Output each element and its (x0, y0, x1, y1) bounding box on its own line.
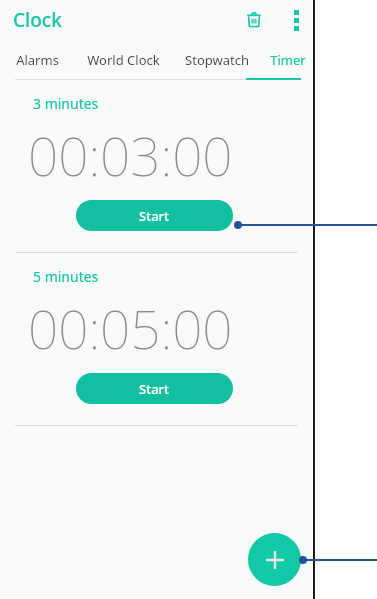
button[interactable]: Stopwatch (172, 40, 262, 80)
button[interactable]: Clock (13, 7, 62, 33)
staticText: Alarms (16, 51, 59, 69)
staticText: Timer (270, 51, 306, 69)
button[interactable]: 3 minutes (33, 94, 99, 113)
button[interactable]: Timer (262, 40, 313, 80)
staticText: Stopwatch (185, 51, 249, 69)
button[interactable]: Add timer (248, 533, 301, 586)
staticText: Start (139, 380, 170, 398)
button[interactable]: More options (280, 4, 312, 36)
button[interactable]: Start (76, 200, 233, 231)
staticText: 00:03:00 (28, 119, 233, 191)
button[interactable]: Alarms (0, 40, 75, 80)
button[interactable]: Delete (238, 4, 270, 36)
staticText: Start (139, 207, 170, 225)
button[interactable]: Start (76, 373, 233, 404)
staticText: 00:05:00 (28, 292, 233, 364)
button[interactable]: World Clock (75, 40, 172, 80)
button[interactable]: 5 minutes (33, 267, 99, 286)
staticText: World Clock (87, 51, 160, 69)
